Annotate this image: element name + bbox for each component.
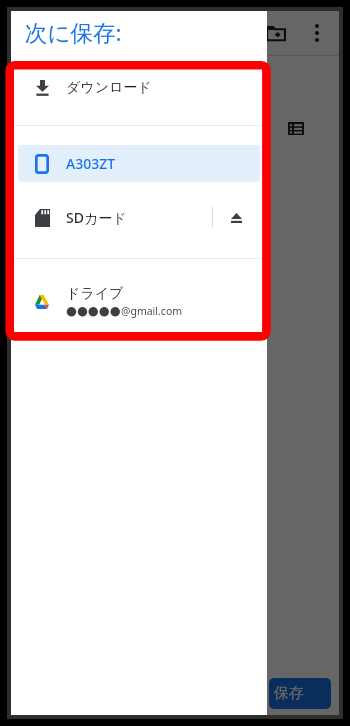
staticText: ●●●●●	[66, 303, 121, 318]
staticText: ドライブ	[66, 285, 124, 303]
button[interactable]: ダウンロード	[18, 69, 260, 106]
staticText: @gmail.com	[121, 304, 183, 318]
button[interactable]: SDカード	[18, 199, 260, 236]
button[interactable]: ドライブ	[18, 283, 260, 320]
staticText: ダウンロード	[66, 79, 152, 97]
button[interactable]: New folder	[254, 11, 298, 55]
staticText: 次に保存:	[25, 17, 122, 48]
button[interactable]: List view	[282, 114, 310, 142]
button[interactable]: Eject	[213, 199, 260, 236]
button[interactable]: A303ZT	[18, 145, 260, 182]
button[interactable]: More options	[295, 11, 339, 55]
button[interactable]: 保存	[269, 678, 331, 709]
staticText: SDカード	[66, 208, 127, 227]
staticText: A303ZT	[66, 154, 116, 173]
staticText: 保存	[274, 684, 304, 703]
